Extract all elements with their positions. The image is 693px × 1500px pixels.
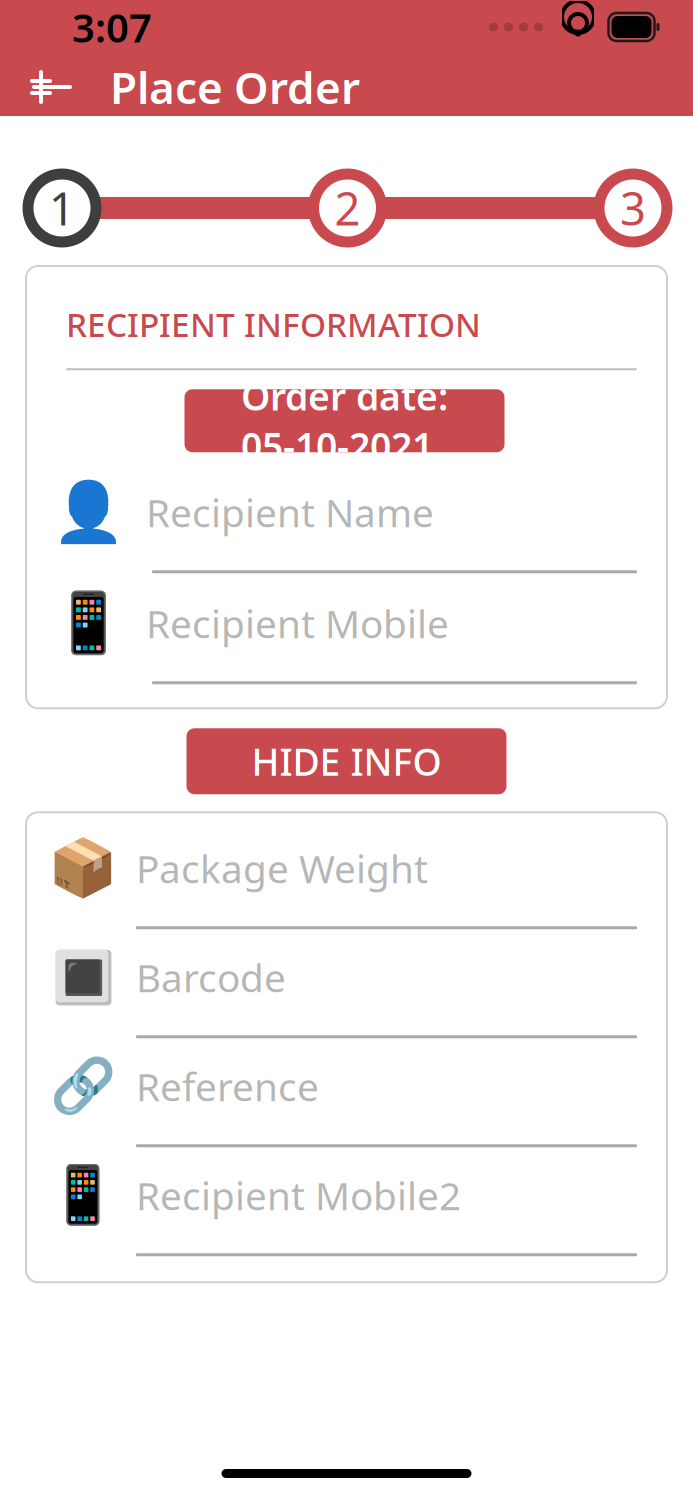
staticText: 📱 <box>51 590 124 657</box>
staticText: 📱 <box>48 1163 118 1227</box>
staticText: 👤 <box>51 479 124 546</box>
staticText: HIDE INFO <box>251 736 441 786</box>
staticText: Recipient Mobile <box>146 598 449 649</box>
button[interactable]: HIDE INFO <box>186 728 506 794</box>
staticText: 🔳 <box>51 948 114 1006</box>
staticText: Package Weight <box>136 843 428 894</box>
button[interactable]: Back <box>24 59 80 115</box>
staticText: RECIPIENT INFORMATION <box>66 302 481 346</box>
staticText: 3:07 <box>72 0 152 53</box>
staticText: 2 <box>334 178 360 238</box>
staticText: 1 <box>49 178 75 238</box>
staticText: Barcode <box>136 952 286 1003</box>
button[interactable]: Order date: 05-10-2021 <box>184 389 504 452</box>
staticText: Reference <box>136 1061 319 1112</box>
staticText: Order date: 05-10-2021 <box>241 371 448 470</box>
staticText: Recipient Name <box>146 487 434 538</box>
staticText: Place Order <box>110 58 360 116</box>
staticText: 📦 <box>48 836 118 900</box>
staticText: 3 <box>620 178 646 238</box>
staticText: Recipient Mobile2 <box>136 1170 461 1221</box>
staticText: 🔗 <box>50 1056 116 1117</box>
